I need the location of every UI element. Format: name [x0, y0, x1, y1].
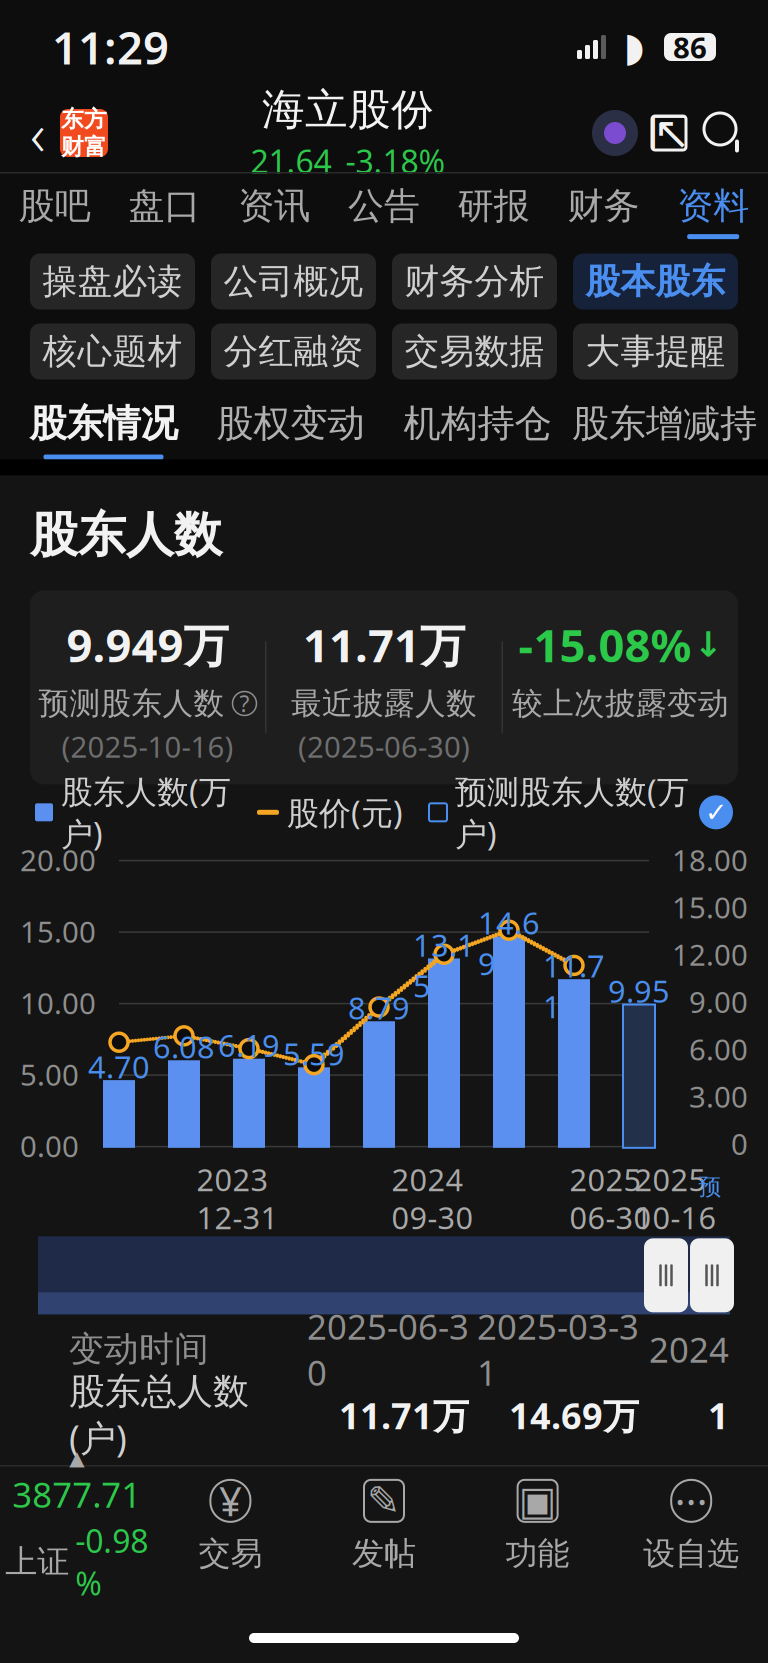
staticText: 公司概况 — [223, 260, 363, 303]
button[interactable]: AI Assistant — [588, 103, 642, 163]
button[interactable]: ¥ — [154, 1466, 307, 1584]
staticText: -3.18% — [345, 140, 445, 182]
staticText: 2025-06-30 — [307, 1303, 469, 1395]
staticText: 预测股东人数(万户) — [455, 770, 689, 855]
button[interactable]: 大事提醒 — [573, 323, 738, 379]
staticText: (2025-06-30) — [298, 727, 470, 766]
button[interactable]: 操盘必读 — [30, 253, 195, 309]
staticText: -15.08% — [518, 614, 691, 675]
staticText: 15.00 — [20, 912, 96, 951]
staticText: 11.71万 — [339, 1391, 469, 1439]
staticText: 8.79 — [348, 987, 410, 1028]
staticText: 14.69万 — [509, 1391, 639, 1439]
button[interactable]: Share — [642, 103, 696, 163]
staticText: 10-16 — [634, 1197, 716, 1238]
staticText: 12.00 — [672, 935, 748, 974]
staticText: ✎ — [367, 1478, 401, 1523]
staticText: ¥ — [219, 1474, 242, 1527]
staticText: 13.15 — [413, 924, 475, 1006]
staticText: 交易 — [198, 1534, 262, 1573]
staticText: 2025 — [569, 1159, 641, 1200]
button[interactable]: Back — [16, 103, 60, 163]
button[interactable]: 股东情况 — [10, 379, 197, 459]
staticText: 交易数据 — [404, 330, 544, 373]
staticText: ‹ — [30, 94, 46, 172]
staticText: 10.00 — [20, 983, 96, 1022]
button[interactable]: 股吧 — [0, 173, 110, 235]
staticText: ⇱ — [650, 107, 688, 159]
staticText: 9.95 — [608, 970, 670, 1011]
button[interactable]: ▣ — [461, 1466, 614, 1584]
staticText: 股本股东 — [585, 260, 725, 303]
staticText: 股东总人数(户) — [69, 1369, 249, 1461]
staticText: 设自选 — [643, 1534, 739, 1573]
staticText: 11:29 — [52, 17, 169, 77]
staticText: 股东人数(万户) — [61, 770, 231, 855]
staticText: 3.00 — [689, 1077, 748, 1116]
button[interactable]: 机构持仓 — [384, 379, 571, 459]
button[interactable]: 研报 — [439, 173, 549, 235]
button[interactable]: Range handle — [690, 1238, 734, 1312]
staticText: 研报 — [458, 184, 530, 228]
button[interactable]: Range handle — [644, 1238, 688, 1312]
button[interactable]: Search — [696, 103, 752, 163]
staticText: ? — [239, 688, 249, 718]
staticText: 20.00 — [20, 840, 96, 879]
button[interactable]: 财务分析 — [392, 253, 557, 309]
staticText: 股权变动 — [216, 401, 364, 446]
button[interactable]: 核心题材 — [30, 323, 195, 379]
button[interactable]: ✎ — [307, 1466, 461, 1584]
button[interactable]: 交易数据 — [392, 323, 557, 379]
staticText: 09-30 — [391, 1197, 473, 1238]
staticText: 4.70 — [88, 1046, 150, 1087]
staticText: 86 — [673, 27, 707, 66]
staticText: 5.59 — [283, 1033, 345, 1074]
staticText: 东方 — [61, 105, 107, 133]
staticText: 变动时间 — [69, 1328, 209, 1371]
staticText: 财务分析 — [404, 260, 544, 303]
staticText: 1 — [708, 1391, 729, 1439]
staticText: 盘口 — [129, 184, 201, 228]
staticText: 较上次披露变动 — [512, 685, 729, 722]
staticText: 股东人数 — [30, 505, 222, 564]
button[interactable]: 盘口 — [110, 173, 219, 235]
button[interactable]: 东方财富 — [60, 109, 108, 157]
staticText: ↓ — [693, 625, 722, 664]
staticText: 06-30 — [569, 1197, 651, 1238]
staticText: 上证 — [5, 1542, 69, 1581]
button[interactable]: 财务 — [549, 173, 658, 235]
staticText: 6.08 — [153, 1026, 215, 1067]
button[interactable]: 股权变动 — [197, 379, 384, 459]
staticText: 2024 — [649, 1326, 729, 1372]
staticText: 海立股份 — [262, 83, 434, 136]
staticText: 股吧 — [19, 184, 91, 228]
staticText: (2025-10-16) — [61, 727, 233, 766]
staticText: 12-31 — [196, 1197, 278, 1238]
staticText: 9.949万 — [66, 614, 228, 675]
staticText: 0 — [731, 1124, 748, 1163]
button[interactable]: 资讯 — [219, 173, 329, 235]
staticText: 2025 — [634, 1159, 706, 1200]
staticText: 18.00 — [672, 840, 748, 879]
button[interactable]: 分红融资 — [211, 323, 376, 379]
staticText: 财富 — [61, 133, 107, 161]
staticText: 机构持仓 — [403, 401, 551, 446]
staticText: 资料 — [677, 184, 749, 228]
staticText: ◗ — [623, 24, 644, 70]
button[interactable]: 公告 — [329, 173, 439, 235]
button[interactable]: 股本股东 — [573, 253, 738, 309]
button[interactable]: ··· — [614, 1466, 768, 1584]
staticText: 股东情况 — [29, 401, 177, 446]
staticText: 14.69 — [478, 902, 540, 984]
button[interactable]: 股东增减持 — [571, 379, 758, 459]
button[interactable]: ▲ — [0, 1466, 154, 1584]
staticText: 2023 — [196, 1159, 268, 1200]
staticText: 功能 — [506, 1534, 570, 1573]
staticText: 预 — [698, 1173, 721, 1201]
staticText: 操盘必读 — [42, 260, 182, 303]
staticText: 21.64 — [250, 140, 331, 182]
button[interactable]: 资料 — [658, 173, 768, 235]
staticText: 核心题材 — [42, 330, 182, 373]
button[interactable]: 公司概况 — [211, 253, 376, 309]
staticText: 大事提醒 — [585, 330, 725, 373]
